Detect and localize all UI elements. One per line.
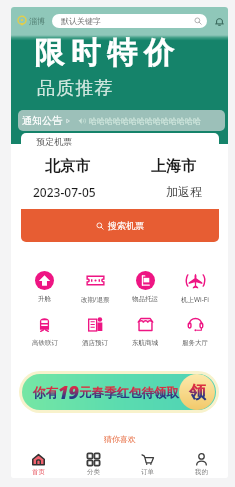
staticText: 你有 xyxy=(33,385,58,401)
staticText: 高铁联订 xyxy=(32,339,58,347)
staticText: 机上Wi-Fi xyxy=(181,295,209,304)
button[interactable]: 机上Wi-Fi xyxy=(170,271,220,304)
button[interactable]: 订单 xyxy=(120,450,174,478)
staticText: 升舱 xyxy=(38,295,51,303)
button[interactable]: 高铁联订 xyxy=(19,315,70,347)
staticText: 改期/退票 xyxy=(81,295,110,304)
button[interactable]: 北京市 xyxy=(45,157,120,176)
button[interactable]: 淄博 xyxy=(15,16,47,26)
staticText: 加返程 xyxy=(166,184,202,199)
staticText: 物品托运 xyxy=(132,295,158,303)
button[interactable]: 物品托运 xyxy=(120,271,170,303)
staticText: 元春季红包待领取 xyxy=(79,385,179,401)
button[interactable]: Notifications xyxy=(212,14,226,28)
staticText: 限时特价 xyxy=(31,34,177,72)
staticText: 首页 xyxy=(32,468,45,476)
button[interactable]: 我的 xyxy=(174,450,228,478)
staticText: 19 xyxy=(58,380,79,405)
staticText: 北京市 xyxy=(45,157,90,176)
staticText: 我的 xyxy=(195,468,208,476)
button[interactable]: 领 xyxy=(179,374,215,410)
button[interactable]: 2023-07-05 xyxy=(33,184,117,200)
button[interactable]: 东航商城 xyxy=(120,315,170,347)
button[interactable]: 上海市 xyxy=(120,157,196,176)
staticText: 分类 xyxy=(87,468,100,476)
staticText: 上海市 xyxy=(151,157,196,176)
staticText: 哈哈哈哈哈哈哈哈哈哈哈哈哈哈 xyxy=(89,116,201,126)
button[interactable]: 改期/退票 xyxy=(70,271,120,304)
staticText: 默认关键字 xyxy=(61,16,101,26)
staticText: 搜索机票 xyxy=(108,220,144,231)
button[interactable]: 服务大厅 xyxy=(170,315,220,347)
button[interactable]: 你有 xyxy=(19,371,219,413)
button[interactable]: 首页 xyxy=(11,450,66,478)
button[interactable]: 通知公告 xyxy=(18,110,225,131)
staticText: 订单 xyxy=(141,468,154,476)
button[interactable]: 加返程 xyxy=(117,184,202,199)
staticText: 酒店预订 xyxy=(82,339,108,347)
staticText: 服务大厅 xyxy=(182,339,208,347)
button[interactable]: 分类 xyxy=(66,450,120,478)
staticText: 猜你喜欢 xyxy=(104,434,136,444)
staticText: 领 xyxy=(189,382,206,403)
staticText: 预定机票 xyxy=(36,136,72,147)
staticText: 2023-07-05 xyxy=(33,184,96,200)
staticText: 通知公告 xyxy=(22,114,62,127)
button[interactable]: 默认关键字 xyxy=(52,14,207,28)
button[interactable]: 酒店预订 xyxy=(70,315,120,347)
button[interactable]: 升舱 xyxy=(19,271,70,303)
staticText: 东航商城 xyxy=(132,339,158,347)
staticText: 品质推荐 xyxy=(37,77,114,100)
button[interactable]: 搜索机票 xyxy=(21,209,219,242)
staticText: 淄博 xyxy=(29,16,45,26)
